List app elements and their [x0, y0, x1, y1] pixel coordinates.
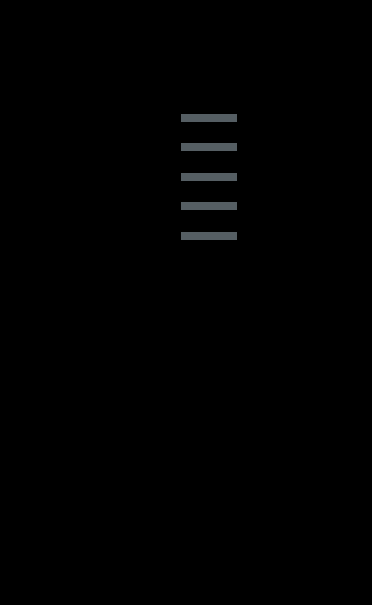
button[interactable]: Item five: [0, 222, 372, 250]
button[interactable]: Item four: [0, 192, 372, 220]
button[interactable]: Item three: [0, 163, 372, 191]
button[interactable]: Item two: [0, 133, 372, 161]
button[interactable]: Item one: [0, 104, 372, 132]
